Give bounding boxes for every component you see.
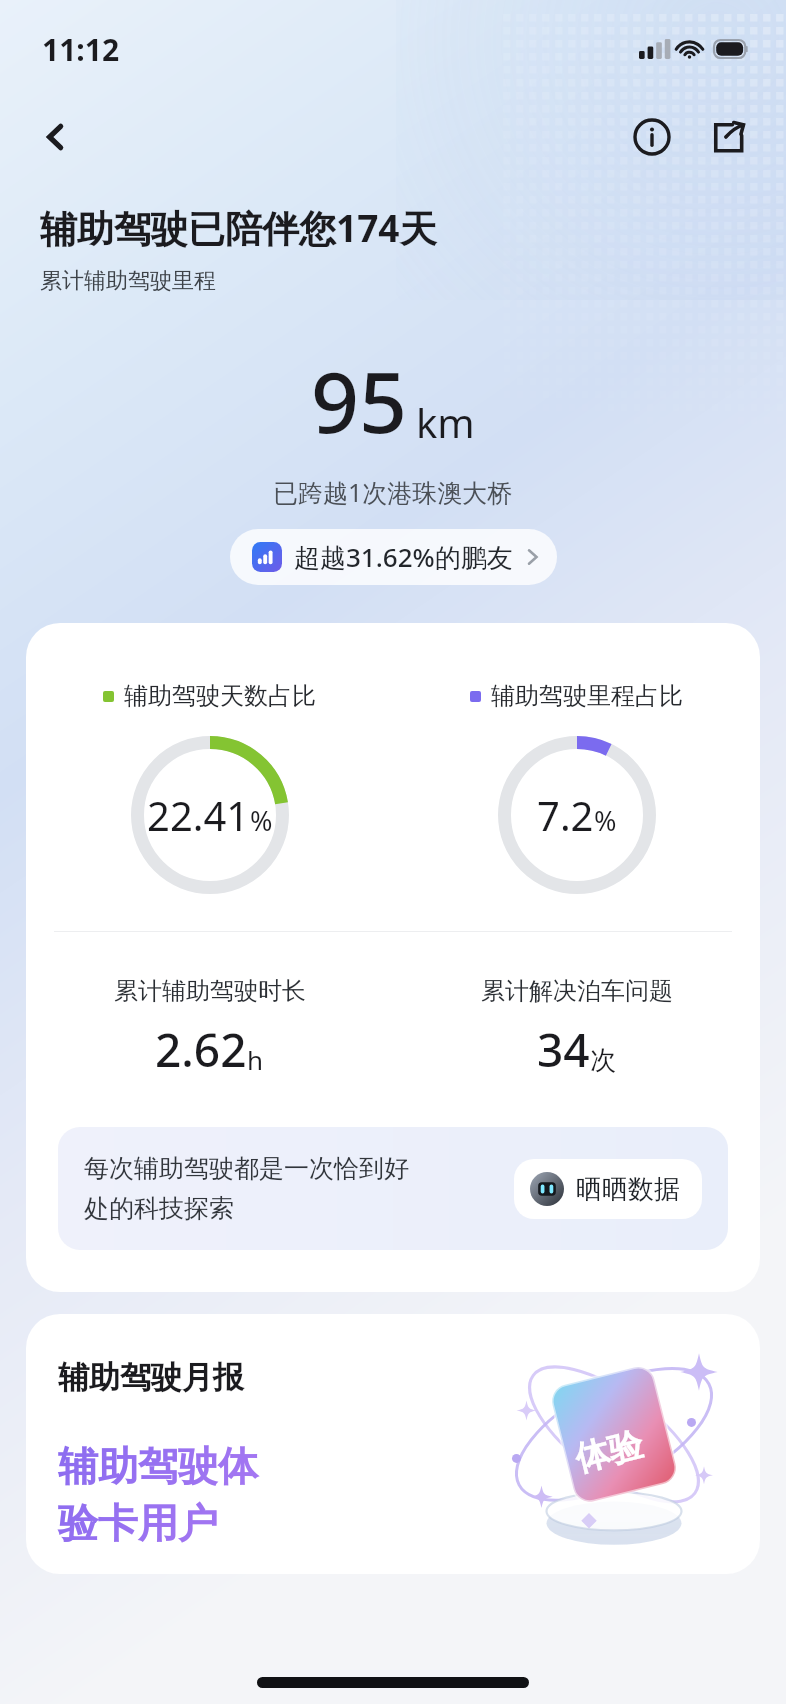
staticText: 辅助驾驶天数占比: [124, 681, 316, 711]
staticText: 辅助驾驶已陪伴您174天: [40, 202, 437, 253]
staticText: 辅助驾驶月报: [58, 1358, 244, 1397]
staticText: km: [416, 395, 475, 449]
staticText: 体验: [571, 1422, 647, 1481]
staticText: 累计辅助驾驶里程: [40, 267, 216, 295]
staticText: 超越31.62%的鹏友: [294, 539, 513, 575]
button[interactable]: Back: [28, 109, 84, 165]
staticText: 累计解决泊车问题: [481, 976, 673, 1006]
staticText: 晒晒数据: [576, 1173, 680, 1206]
staticText: 累计辅助驾驶时长: [114, 976, 306, 1006]
button[interactable]: 超越31.62%的鹏友: [230, 529, 557, 585]
button[interactable]: Info: [622, 107, 682, 167]
staticText: 每次辅助驾驶都是一次恰到好 处的科技探索: [84, 1153, 409, 1224]
staticText: 辅助驾驶体 验卡用户: [58, 1441, 258, 1549]
staticText: 34: [537, 1018, 590, 1081]
staticText: 辅助驾驶里程占比: [491, 681, 683, 711]
staticText: 22.41: [147, 788, 250, 842]
staticText: %: [594, 802, 617, 839]
button[interactable]: Share: [698, 107, 758, 167]
staticText: 次: [590, 1044, 616, 1077]
staticText: 已跨越1次港珠澳大桥: [273, 475, 513, 509]
staticText: 95: [311, 343, 408, 457]
staticText: %: [250, 802, 273, 839]
button[interactable]: 辅助驾驶月报: [26, 1314, 760, 1574]
button[interactable]: 晒晒数据: [514, 1159, 702, 1219]
staticText: h: [247, 1042, 264, 1077]
staticText: 2.62: [155, 1018, 247, 1081]
button[interactable]: 每次辅助驾驶都是一次恰到好 处的科技探索: [58, 1127, 728, 1250]
staticText: 11:12: [42, 29, 120, 70]
staticText: 7.2: [537, 788, 594, 842]
